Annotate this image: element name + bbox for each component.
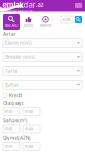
staticText: KIRAYƏ bbox=[40, 24, 51, 28]
staticText: min bbox=[5, 144, 12, 149]
button[interactable]: Search by code bbox=[75, 16, 82, 23]
staticText: Əmlakın növü bbox=[5, 54, 35, 60]
button[interactable]: min bbox=[3, 142, 20, 150]
staticText: ƏMLAKLI bbox=[4, 24, 18, 28]
staticText: Qiymət(AZN) bbox=[3, 135, 31, 141]
staticText: SATIŞ bbox=[24, 24, 33, 28]
button[interactable]: min bbox=[3, 125, 20, 133]
staticText: Otaq sayı: bbox=[3, 100, 24, 106]
staticText: min bbox=[5, 109, 12, 114]
button[interactable]: ƏMLAKLI bbox=[3, 14, 20, 30]
button[interactable]: Şəhər bbox=[3, 80, 82, 89]
staticText: Şəhər bbox=[5, 82, 19, 88]
button[interactable]: KIRAYƏ bbox=[37, 14, 54, 30]
button[interactable]: Əmlakın növü bbox=[3, 52, 82, 61]
button[interactable]: min bbox=[3, 107, 20, 115]
button[interactable]: max bbox=[23, 125, 40, 133]
staticText: max bbox=[25, 144, 33, 149]
button[interactable]: Elanın növü bbox=[3, 38, 82, 47]
staticText: daşınmaz əmlak portalı bbox=[6, 9, 33, 13]
staticText: .az bbox=[35, 1, 43, 8]
staticText: Kredit bbox=[9, 93, 22, 98]
button[interactable]: max bbox=[23, 107, 40, 115]
staticText: Sahəsi(m²) bbox=[3, 118, 28, 123]
staticText: Tarixi bbox=[5, 68, 17, 74]
button[interactable]: Tarixi bbox=[3, 66, 82, 75]
staticText: Kod bbox=[63, 17, 70, 22]
staticText: max bbox=[25, 109, 33, 114]
button[interactable]: max bbox=[23, 142, 40, 150]
staticText: dar bbox=[23, 0, 35, 9]
button[interactable]: Menu bbox=[75, 3, 82, 8]
staticText: Axtar bbox=[3, 31, 16, 37]
staticText: max bbox=[25, 126, 33, 131]
button[interactable]: SATIŞ bbox=[20, 14, 37, 30]
staticText: Elanın növü bbox=[5, 40, 32, 46]
button[interactable]: Kredit bbox=[3, 93, 82, 98]
staticText: min bbox=[5, 126, 12, 131]
staticText: emlak bbox=[2, 0, 23, 9]
